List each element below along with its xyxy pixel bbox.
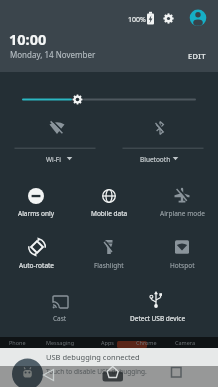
staticText: Cast: [53, 314, 67, 323]
staticText: Bluetooth: [140, 155, 171, 164]
staticText: Apps: [101, 339, 114, 346]
staticText: Airplane mode: [160, 209, 205, 218]
button[interactable]: [76, 226, 142, 274]
staticText: EDIT: [188, 51, 206, 61]
button[interactable]: [186, 6, 212, 30]
button[interactable]: [0, 348, 218, 366]
button[interactable]: [124, 280, 189, 326]
staticText: Touch to disable USB debugging.: [46, 367, 147, 376]
staticText: USB debugging connected: [46, 352, 140, 362]
staticText: 100%: [128, 15, 146, 25]
button[interactable]: [156, 6, 180, 30]
staticText: Monday, 14 November: [10, 49, 96, 60]
button[interactable]: [149, 174, 215, 222]
staticText: Alarms only: [18, 209, 54, 218]
button[interactable]: [34, 366, 62, 387]
staticText: Flashlight: [94, 261, 124, 270]
staticText: Detect USB device: [130, 314, 186, 323]
button[interactable]: [8, 88, 210, 110]
staticText: Mobile data: [91, 209, 128, 218]
button[interactable]: [160, 366, 188, 387]
button[interactable]: [21, 112, 88, 166]
button[interactable]: [182, 44, 212, 62]
staticText: Hotspot: [170, 261, 195, 270]
button[interactable]: [129, 112, 196, 166]
button[interactable]: [149, 226, 215, 274]
button[interactable]: [3, 174, 69, 222]
button[interactable]: [98, 366, 126, 387]
staticText: Chrome: [136, 339, 157, 346]
staticText: Auto-rotate: [19, 261, 55, 270]
staticText: Wi-Fi: [46, 155, 61, 164]
staticText: Phone: [9, 339, 26, 346]
button[interactable]: [76, 174, 142, 222]
staticText: 10:00: [9, 29, 47, 49]
button[interactable]: [4, 226, 70, 274]
staticText: Camera: [175, 339, 196, 346]
button[interactable]: [28, 280, 93, 326]
staticText: Messaging: [46, 339, 75, 346]
